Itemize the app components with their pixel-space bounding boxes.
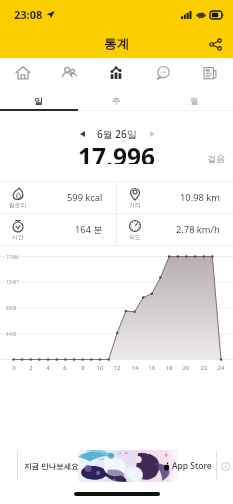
- button[interactable]: 시간: [0, 214, 116, 245]
- button[interactable]: 일: [0, 88, 77, 111]
- button[interactable]: Ad info: [217, 450, 233, 482]
- staticText: 2.78 km/h: [176, 223, 220, 236]
- staticText: 10.98 km: [180, 191, 220, 204]
- staticText: 17996: [6, 254, 19, 260]
- staticText: 24: [214, 364, 228, 372]
- staticText: 2: [24, 364, 38, 372]
- staticText: 시간: [12, 233, 24, 240]
- staticText: 17,996: [78, 140, 156, 164]
- button[interactable]: 지금 만나보세요: [0, 450, 233, 482]
- staticText: 8998: [6, 305, 17, 311]
- button[interactable]: Home: [0, 58, 46, 88]
- staticText: 0: [7, 364, 21, 372]
- staticText: 주: [112, 96, 121, 107]
- staticText: 14: [128, 364, 142, 372]
- staticText: 23:08: [14, 7, 43, 22]
- staticText: 6: [58, 364, 72, 372]
- staticText: 6월 26일: [97, 127, 137, 141]
- button[interactable]: 속도: [117, 214, 233, 245]
- button[interactable]: Chat: [139, 58, 186, 88]
- button[interactable]: 거리: [117, 182, 233, 213]
- staticText: 16: [145, 364, 159, 372]
- staticText: App Store: [172, 460, 212, 472]
- button[interactable]: Share: [202, 31, 228, 57]
- staticText: 164 분: [75, 223, 103, 236]
- button[interactable]: Statistics: [92, 58, 139, 88]
- staticText: 칼로리: [9, 201, 27, 208]
- button[interactable]: 주: [77, 88, 155, 111]
- staticText: 통계: [104, 36, 129, 52]
- staticText: 599 kcal: [67, 191, 103, 204]
- staticText: 10: [93, 364, 107, 372]
- staticText: 거리: [129, 201, 141, 208]
- staticText: 월: [190, 96, 199, 107]
- staticText: 22: [197, 364, 211, 372]
- staticText: 일: [34, 96, 43, 107]
- staticText: 13497: [6, 279, 19, 285]
- button[interactable]: Previous day: [73, 125, 91, 143]
- staticText: 20: [179, 364, 193, 372]
- staticText: 속도: [129, 233, 141, 240]
- button[interactable]: 월: [155, 88, 233, 111]
- staticText: 12: [110, 364, 124, 372]
- button[interactable]: Next day: [143, 125, 161, 143]
- staticText: 4499: [6, 331, 17, 337]
- staticText: 18: [162, 364, 176, 372]
- button[interactable]: News: [186, 58, 233, 88]
- staticText: 4: [41, 364, 55, 372]
- button[interactable]: Friends: [46, 58, 92, 88]
- staticText: 걸음: [207, 153, 225, 164]
- button[interactable]: 칼로리: [0, 182, 116, 213]
- staticText: 8: [76, 364, 90, 372]
- staticText: 지금 만나보세요: [24, 461, 79, 471]
